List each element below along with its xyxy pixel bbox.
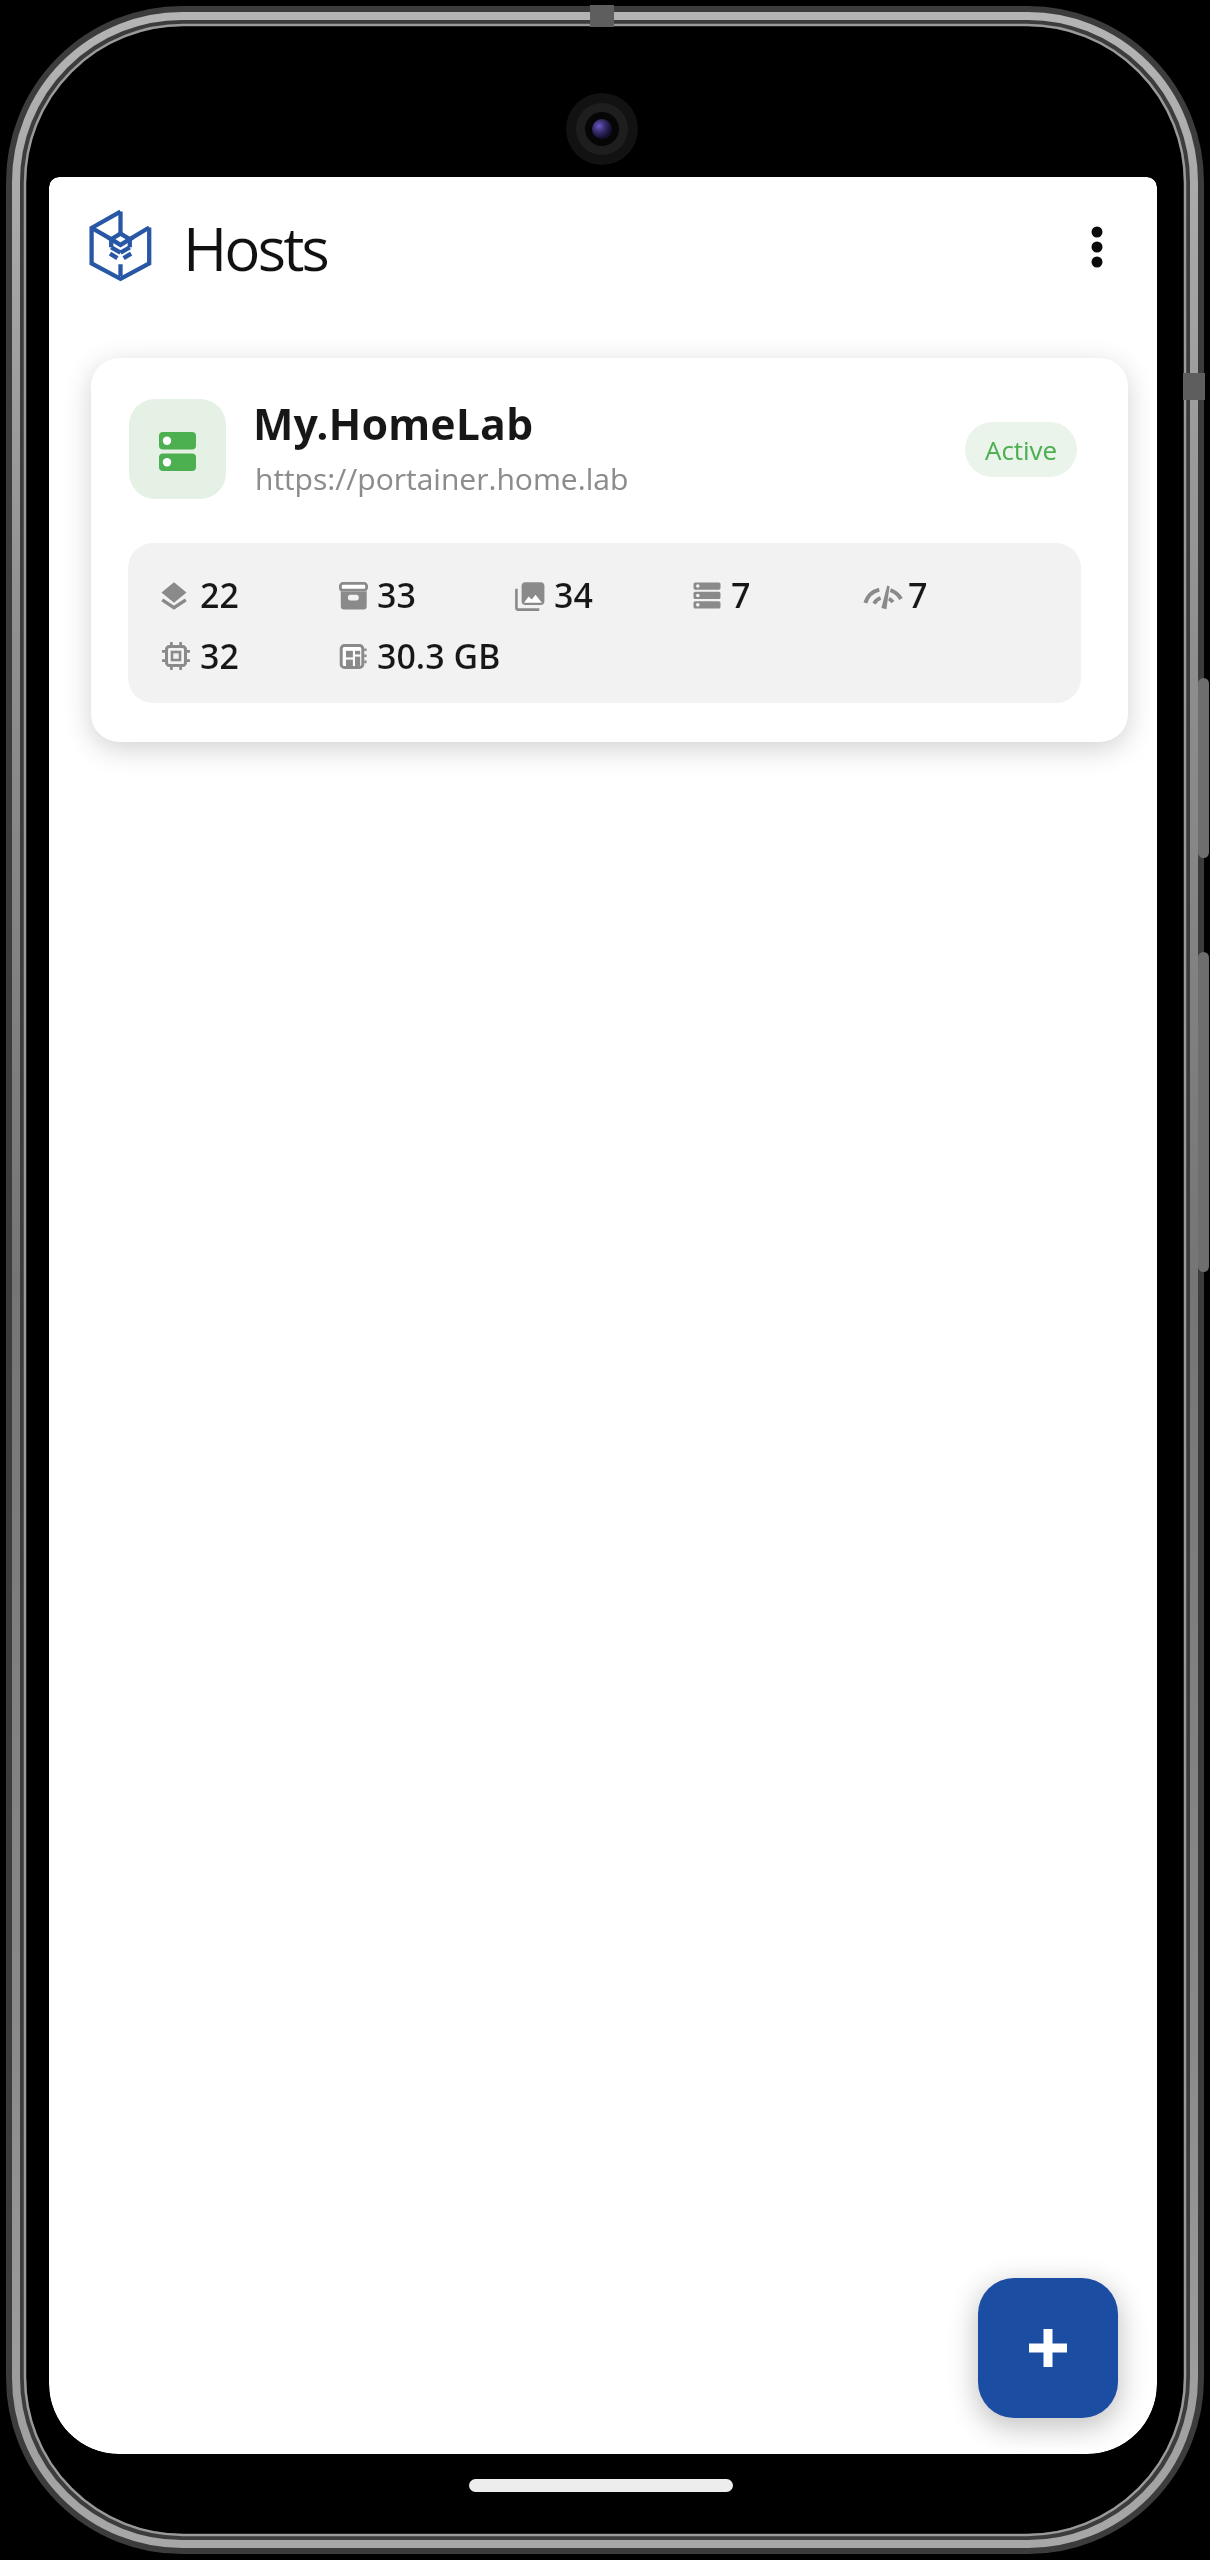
staticText: https://portainer.home.lab [255,458,629,499]
staticText: 34 [554,572,593,618]
staticText: 7 [731,572,751,618]
staticText: My.HomeLab [253,394,534,453]
staticText: 7 [908,572,928,618]
staticText: 22 [200,572,239,618]
button[interactable] [1057,192,1137,302]
staticText: Hosts [183,207,327,289]
staticText: 32 [200,633,239,679]
staticText: 33 [377,572,416,618]
button[interactable]: My.HomeLab [91,358,1128,742]
staticText: Active [985,432,1058,467]
staticText: 30.3 GB [377,633,501,679]
button[interactable] [978,2278,1118,2418]
